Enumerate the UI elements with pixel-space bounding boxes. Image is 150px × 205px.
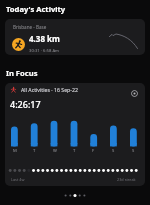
staticText: 23d streak — [117, 177, 136, 182]
staticText: 4.38 km — [29, 33, 60, 44]
staticText: Brisbane - Base — [13, 24, 47, 30]
staticText: M — [13, 148, 17, 154]
staticText: Last 4w — [11, 177, 25, 182]
staticText: In Focus — [6, 68, 38, 78]
staticText: S — [132, 148, 135, 154]
button[interactable]: Add activity — [131, 90, 138, 97]
staticText: 4:26:17 — [10, 98, 41, 110]
staticText: W — [53, 148, 57, 154]
staticText: F — [92, 148, 95, 154]
staticText: 30:31 · 6:58 Am — [29, 48, 59, 54]
staticText: T — [33, 148, 36, 154]
button[interactable]: Brisbane - Base — [5, 19, 145, 55]
staticText: S — [112, 148, 115, 154]
staticText: T — [73, 148, 76, 154]
staticText: Today's Activity — [6, 4, 66, 14]
staticText: All Activities · 16 Sep-22 — [21, 86, 78, 93]
